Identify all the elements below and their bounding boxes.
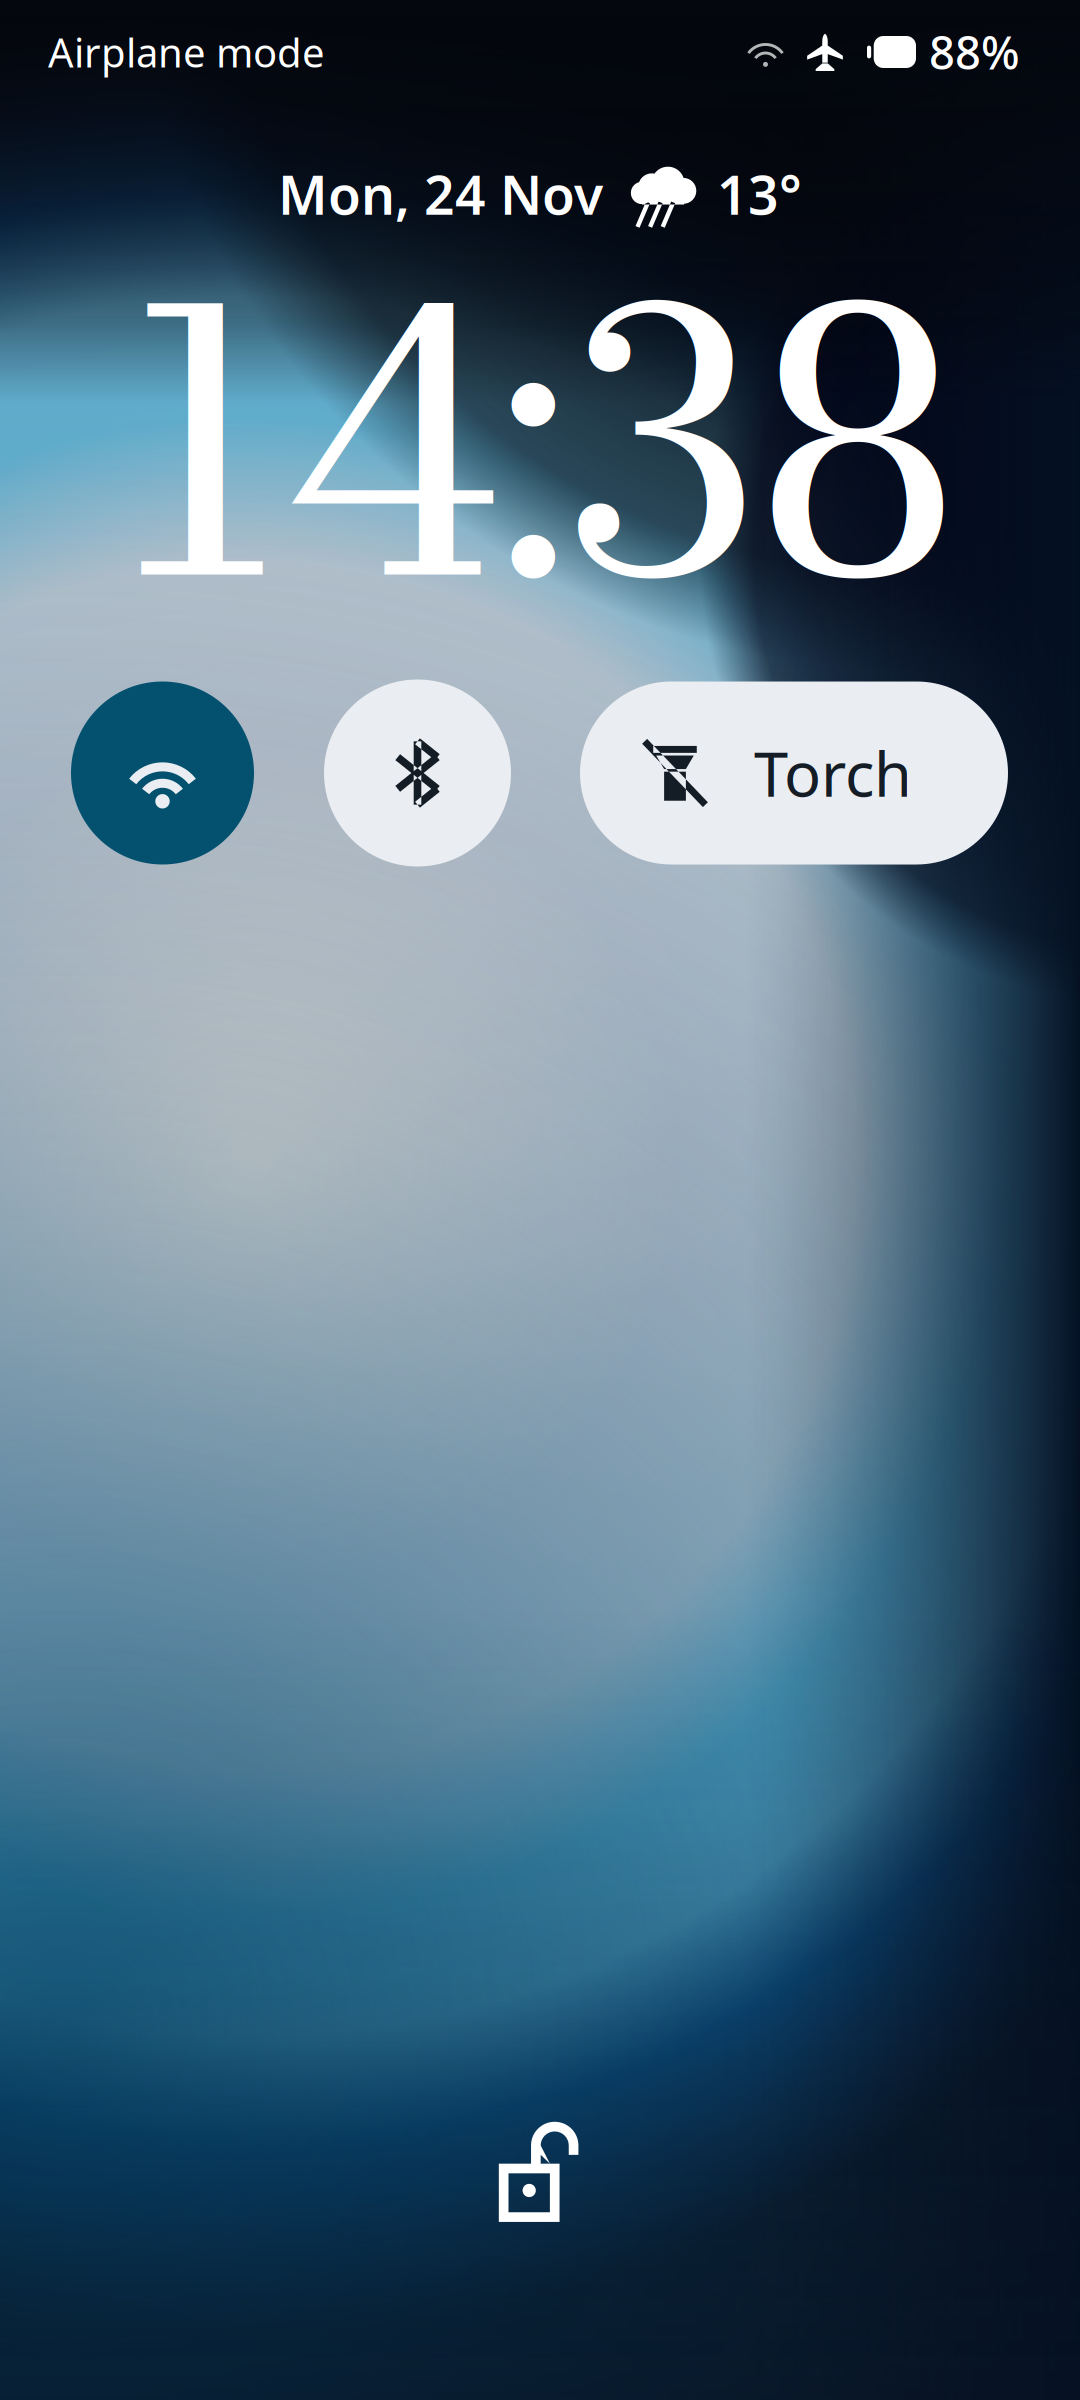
- button[interactable]: Bluetooth: [324, 679, 511, 866]
- button[interactable]: Torch: [580, 681, 1008, 864]
- staticText: Airplane mode: [48, 25, 325, 78]
- staticText: Torch: [754, 732, 912, 814]
- staticText: 13°: [717, 159, 802, 229]
- staticText: 88%: [929, 22, 1020, 82]
- button[interactable]: Wi-Fi: [71, 681, 254, 864]
- staticText: 14:38: [123, 166, 957, 720]
- button[interactable]: Unlock: [460, 2086, 620, 2258]
- staticText: Mon, 24 Nov: [278, 159, 603, 229]
